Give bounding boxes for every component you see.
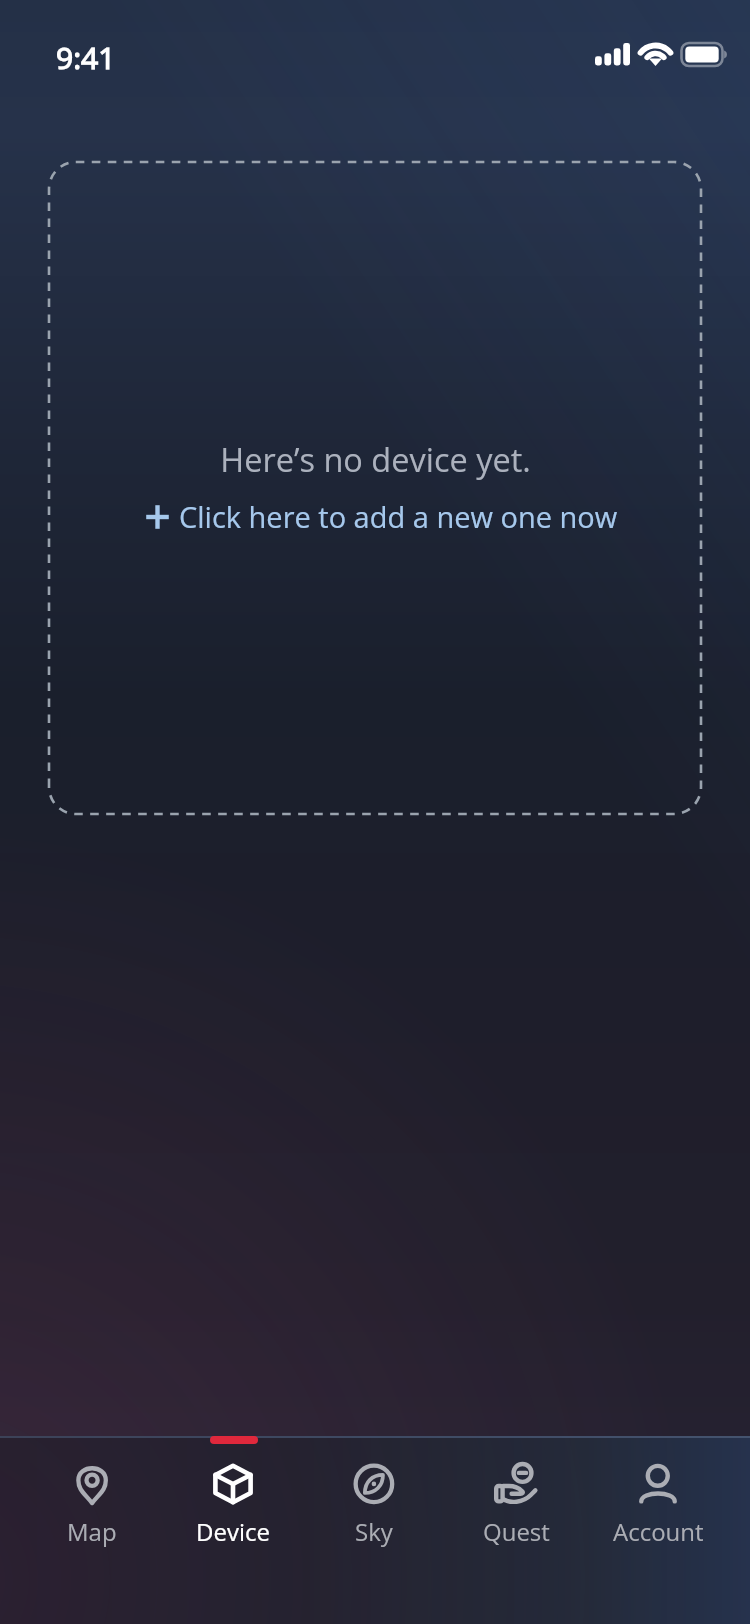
button[interactable]: Account bbox=[587, 1436, 729, 1548]
staticText: Click here to add a new one now bbox=[179, 497, 618, 536]
staticText: Here’s no device yet. bbox=[220, 437, 531, 481]
staticText: Sky bbox=[355, 1515, 393, 1548]
staticText: Device bbox=[196, 1515, 270, 1548]
staticText: Quest bbox=[483, 1515, 550, 1548]
staticText: Map bbox=[67, 1515, 117, 1548]
button[interactable]: Quest bbox=[445, 1436, 587, 1548]
button[interactable]: Sky bbox=[303, 1436, 445, 1548]
button[interactable]: Here’s no device yet. bbox=[49, 162, 701, 814]
staticText: 9:41 bbox=[56, 37, 116, 78]
button[interactable]: Device bbox=[162, 1436, 303, 1548]
staticText: Account bbox=[613, 1515, 704, 1548]
button[interactable]: Map bbox=[21, 1436, 162, 1548]
